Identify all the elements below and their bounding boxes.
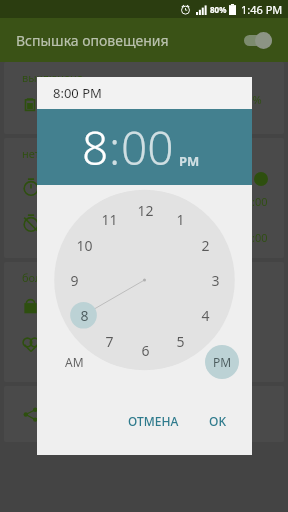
button[interactable]: AM: [57, 345, 91, 379]
staticText: выключено: [22, 70, 84, 85]
staticText: Вспышка оповещения: [16, 31, 169, 50]
button[interactable]: 10: [71, 232, 97, 258]
staticText: 9: [70, 271, 79, 290]
staticText: :00: [252, 230, 268, 245]
button[interactable]: 12: [132, 197, 158, 223]
button[interactable]: PM: [205, 345, 239, 379]
button[interactable]: 00: [121, 116, 174, 179]
staticText: 11: [101, 210, 118, 229]
staticText: 85%: [240, 92, 262, 107]
staticText: 3: [211, 271, 220, 290]
staticText: более: [22, 270, 54, 285]
staticText: 5: [176, 332, 185, 351]
staticText: ОТМЕНА: [128, 413, 179, 429]
button[interactable]: 2: [192, 232, 218, 258]
staticText: 1: [176, 210, 185, 229]
staticText: 10: [76, 236, 93, 255]
staticText: 2: [201, 236, 210, 255]
button[interactable]: 3: [202, 267, 228, 293]
staticText: 00: [121, 116, 174, 179]
button[interactable]: 11: [96, 206, 122, 232]
button[interactable]: 9: [61, 267, 87, 293]
staticText: 8: [82, 116, 109, 179]
staticText: :: [109, 116, 121, 179]
staticText: 8: [80, 306, 89, 325]
staticText: 6: [141, 341, 150, 360]
button[interactable]: 8: [82, 116, 109, 179]
button[interactable]: 4: [192, 302, 218, 328]
button[interactable]: 1: [167, 206, 193, 232]
button[interactable]: OK: [199, 406, 236, 436]
button[interactable]: 5: [167, 328, 193, 354]
button[interactable]: 7: [96, 328, 122, 354]
staticText: 1:46 PM: [241, 2, 283, 17]
staticText: :00: [252, 194, 268, 209]
button[interactable]: Toggle notification flash: [240, 31, 272, 49]
button[interactable]: 8: [71, 302, 97, 328]
button[interactable]: ОТМЕНА: [118, 406, 189, 436]
staticText: 80%: [210, 4, 227, 15]
button[interactable]: 6: [132, 337, 158, 363]
staticText: 7: [105, 332, 114, 351]
button[interactable]: PM: [179, 152, 200, 170]
staticText: AM: [65, 354, 84, 370]
staticText: 12: [137, 201, 154, 220]
staticText: PM: [179, 152, 200, 170]
staticText: 4: [201, 306, 210, 325]
staticText: 8:00 PM: [53, 84, 102, 102]
staticText: нет: [22, 146, 40, 161]
staticText: PM: [213, 354, 232, 370]
staticText: OK: [209, 413, 226, 429]
